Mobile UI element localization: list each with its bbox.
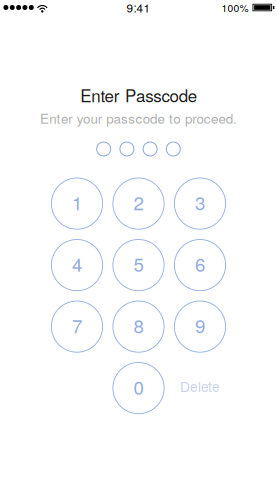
staticText: 0	[133, 373, 143, 400]
button[interactable]: 5	[113, 239, 164, 291]
staticText: 7	[72, 312, 82, 338]
staticText: 8	[133, 312, 143, 338]
button[interactable]: 6	[174, 239, 226, 291]
staticText: Enter Passcode	[80, 83, 197, 107]
staticText: 2	[133, 189, 143, 215]
staticText: 100%	[221, 0, 248, 15]
staticText: 5	[133, 250, 143, 277]
button[interactable]: 9	[174, 301, 226, 352]
staticText: 1	[72, 189, 82, 215]
button[interactable]: 1	[51, 178, 103, 229]
staticText: 9	[195, 312, 205, 338]
staticText: 9:41	[126, 0, 150, 16]
button[interactable]: 3	[174, 178, 226, 229]
button[interactable]: 8	[113, 301, 164, 352]
staticText: 4	[72, 250, 82, 277]
staticText: Enter your passcode to proceed.	[40, 108, 237, 128]
staticText: 6	[195, 250, 205, 277]
button[interactable]: 7	[51, 301, 103, 352]
staticText: 3	[195, 189, 205, 215]
button[interactable]: Delete	[174, 362, 226, 414]
button[interactable]: 4	[51, 239, 103, 291]
staticText: Delete	[180, 376, 220, 396]
button[interactable]: 0	[113, 362, 164, 414]
button[interactable]: 2	[113, 178, 164, 229]
